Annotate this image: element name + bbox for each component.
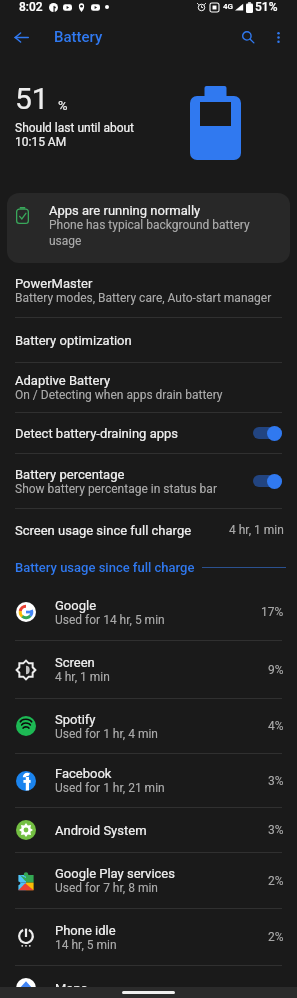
staticText: 14 hr, 5 min [55, 938, 117, 952]
button[interactable]: Battery percentage [0, 454, 297, 508]
staticText: Android System [55, 823, 147, 838]
staticText: 17% [261, 605, 284, 619]
staticText: Screen usage since full charge [15, 523, 229, 538]
button[interactable]: Google [0, 584, 297, 640]
button[interactable]: Phone idle [0, 909, 297, 965]
button[interactable]: Android System [0, 808, 297, 852]
staticText: Facebook [55, 766, 112, 781]
staticText: 10:15 AM [15, 135, 67, 149]
button[interactable]: Adaptive Battery [0, 363, 297, 412]
button[interactable]: Apps are running normally [7, 193, 290, 263]
staticText: 4 hr, 1 min [229, 523, 284, 537]
staticText: 4G [223, 2, 233, 11]
button[interactable]: Spotify [0, 699, 297, 753]
button[interactable]: Battery optimization [0, 318, 297, 362]
staticText: 9% [268, 663, 284, 677]
staticText: Google Play services [55, 866, 175, 881]
staticText: 4 hr, 1 min [55, 670, 110, 684]
staticText: Phone idle [55, 923, 116, 938]
button[interactable]: Screen [0, 641, 297, 698]
staticText: Should last until about [15, 121, 135, 135]
staticText: On / Detecting when apps drain battery [15, 388, 223, 402]
button[interactable]: More options [263, 22, 293, 52]
staticText: Maps [55, 981, 88, 996]
staticText: PowerMaster [15, 276, 93, 291]
staticText: Phone has typical background battery usa… [49, 218, 257, 248]
button[interactable]: Detect battery-draining apps [0, 413, 297, 453]
staticText: 51% [255, 0, 278, 14]
staticText: Apps are running normally [49, 203, 201, 218]
staticText: Screen [55, 655, 95, 670]
staticText: Used for 7 hr, 8 min [55, 881, 158, 895]
staticText: 2% [268, 930, 284, 944]
staticText: Show battery percentage in status bar [15, 482, 217, 496]
staticText: Google [55, 598, 97, 613]
staticText: 4% [268, 719, 284, 733]
staticText: Spotify [55, 712, 96, 727]
staticText: Adaptive Battery [15, 373, 111, 388]
staticText: Used for 1 hr, 4 min [55, 727, 158, 741]
button[interactable]: Facebook [0, 754, 297, 807]
staticText: Battery percentage [15, 467, 125, 482]
staticText: Battery modes, Battery care, Auto-start … [15, 291, 272, 305]
staticText: 3% [268, 774, 284, 788]
staticText: 51 [15, 81, 49, 116]
button[interactable]: Screen usage since full charge [0, 509, 297, 551]
button[interactable]: PowerMaster [0, 263, 297, 317]
staticText: Used for 14 hr, 5 min [55, 613, 165, 627]
staticText: Battery usage since full charge [15, 560, 195, 575]
button[interactable]: Google Play services [0, 853, 297, 908]
staticText: Battery [54, 28, 103, 46]
staticText: % [58, 98, 68, 113]
staticText: Used for 1 hr, 21 min [55, 781, 165, 795]
button[interactable]: Back [5, 22, 37, 52]
staticText: Detect battery-draining apps [15, 426, 179, 441]
button[interactable]: Maps [0, 966, 297, 998]
staticText: 2% [268, 874, 284, 888]
button[interactable]: Search [233, 22, 263, 52]
staticText: 8:02 [19, 0, 43, 14]
staticText: 3% [268, 823, 284, 837]
staticText: Battery optimization [15, 333, 132, 348]
